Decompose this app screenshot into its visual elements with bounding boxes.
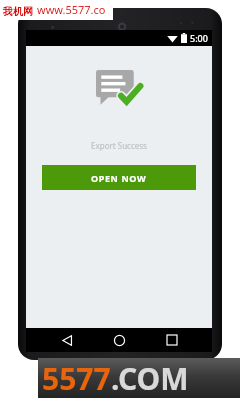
staticText: .COM: [111, 358, 189, 398]
staticText: www.5577.com: [37, 2, 113, 20]
staticText: Export Success: [91, 140, 147, 151]
button[interactable]: Back: [55, 328, 79, 352]
staticText: 5577: [42, 358, 111, 398]
button[interactable]: Home: [107, 328, 131, 352]
staticText: OPEN NOW: [91, 172, 147, 184]
button[interactable]: Recent apps: [160, 328, 184, 352]
other: Export success icon: [96, 70, 142, 110]
staticText: 5:00: [190, 32, 208, 44]
staticText: 我机网: [3, 5, 33, 18]
button[interactable]: OPEN NOW: [42, 165, 196, 190]
